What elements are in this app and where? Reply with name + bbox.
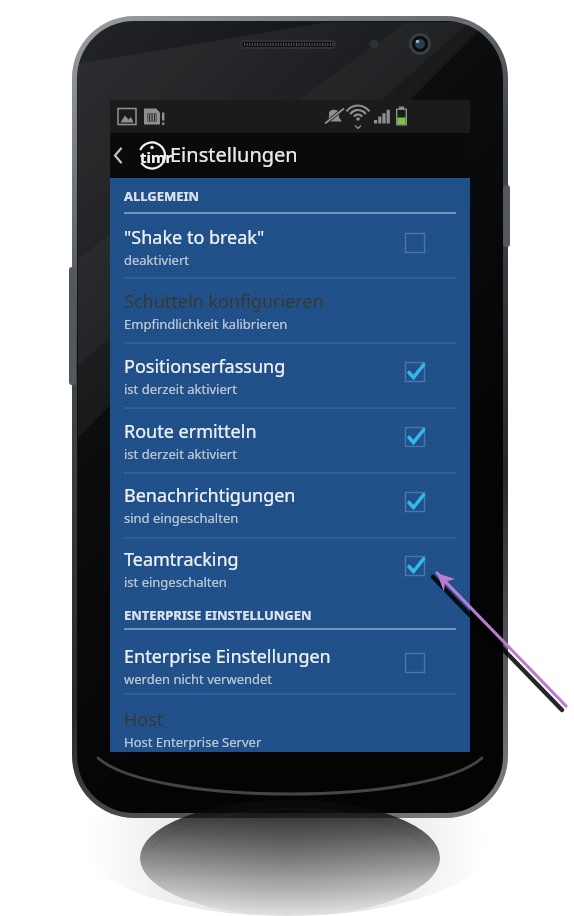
staticText: "Shake to break" bbox=[124, 225, 265, 250]
button[interactable]: Zurück zu timr bbox=[110, 133, 470, 178]
staticText: ist derzeit aktiviert bbox=[124, 380, 237, 398]
staticText: Route ermitteln bbox=[124, 419, 257, 444]
button[interactable]: Teamtracking bbox=[124, 547, 456, 599]
staticText: ist derzeit aktiviert bbox=[124, 445, 237, 463]
staticText: timr bbox=[140, 147, 173, 167]
button[interactable]: Schütteln konfigurieren bbox=[124, 289, 456, 341]
button[interactable]: Positionserfassung bbox=[124, 354, 456, 406]
button[interactable]: Route ermitteln bbox=[124, 419, 456, 471]
staticText: Host bbox=[124, 707, 164, 732]
button[interactable]: Benachrichtigungen bbox=[124, 483, 456, 535]
staticText: Schütteln konfigurieren bbox=[124, 289, 324, 314]
button[interactable]: ENTERPRISE EINSTELLUNGEN bbox=[124, 606, 456, 630]
staticText: Teamtracking bbox=[124, 547, 239, 572]
staticText: werden nicht verwendet bbox=[124, 670, 273, 688]
staticText: sind eingeschalten bbox=[124, 509, 239, 527]
staticText: Host Enterprise Server bbox=[124, 733, 262, 751]
staticText: Positionserfassung bbox=[124, 354, 286, 379]
button[interactable]: ALLGEMEIN bbox=[124, 187, 456, 211]
staticText: Empfindlichkeit kalibrieren bbox=[124, 315, 288, 333]
button[interactable]: Host bbox=[124, 707, 456, 759]
staticText: Benachrichtigungen bbox=[124, 483, 296, 508]
staticText: Enterprise Einstellungen bbox=[124, 644, 331, 669]
staticText: ist eingeschalten bbox=[124, 573, 227, 591]
button[interactable]: "Shake to break" bbox=[124, 225, 456, 277]
button[interactable]: Enterprise Einstellungen bbox=[124, 644, 456, 696]
staticText: ENTERPRISE EINSTELLUNGEN bbox=[124, 606, 312, 624]
staticText: Einstellungen bbox=[170, 141, 298, 168]
staticText: ALLGEMEIN bbox=[124, 187, 200, 205]
staticText: deaktiviert bbox=[124, 251, 189, 269]
